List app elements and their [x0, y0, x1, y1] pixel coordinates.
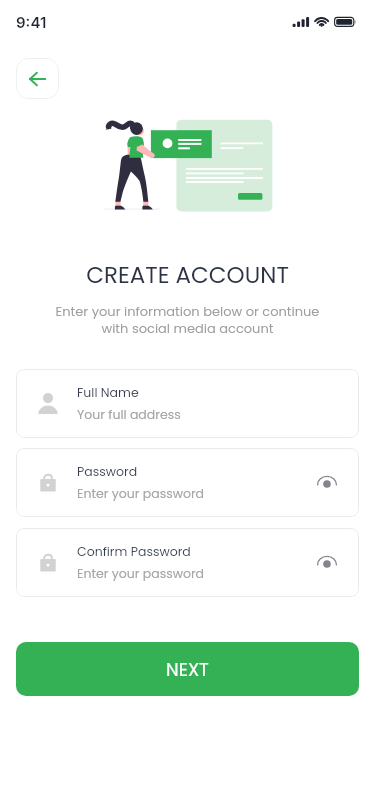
button[interactable]: Back: [16, 58, 59, 99]
staticText: Enter your information below or continue…: [0, 302, 375, 338]
button[interactable]: Show password: [307, 457, 359, 509]
button[interactable]: NEXT: [16, 642, 359, 696]
staticText: NEXT: [166, 657, 209, 682]
staticText: Enter your password: [77, 485, 205, 502]
staticText: Your full address: [77, 406, 181, 423]
staticText: Full Name: [77, 384, 139, 401]
button[interactable]: Password: [16, 448, 359, 517]
staticText: Password: [77, 463, 138, 480]
button[interactable]: Show password: [307, 537, 359, 589]
staticText: 9:41: [16, 13, 47, 31]
staticText: Confirm Password: [77, 543, 191, 560]
staticText: CREATE ACCOUNT: [0, 259, 375, 291]
button[interactable]: Confirm Password: [16, 528, 359, 597]
button[interactable]: Full Name: [16, 369, 359, 438]
staticText: Enter your password: [77, 565, 205, 582]
